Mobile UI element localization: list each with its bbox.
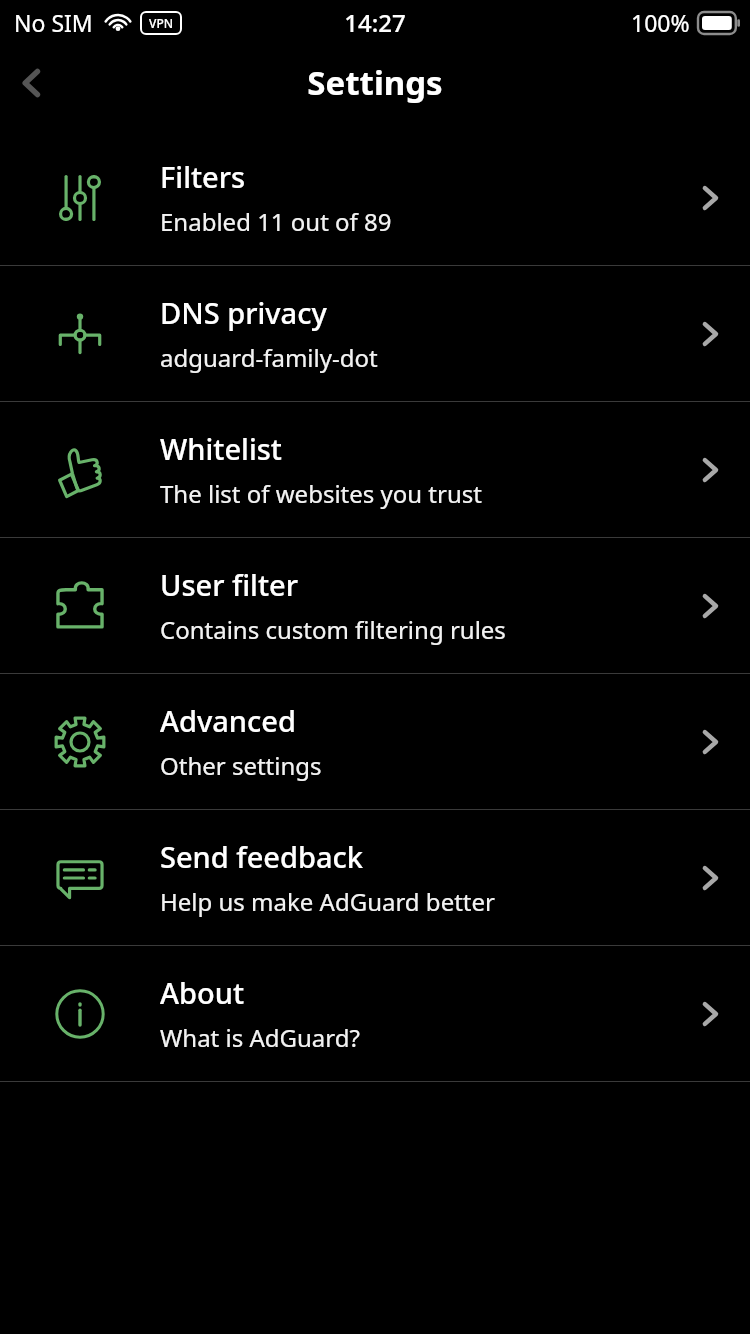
staticText: No SIM: [14, 7, 93, 38]
staticText: VPN: [149, 15, 174, 31]
staticText: Enabled 11 out of 89: [160, 205, 392, 238]
button[interactable]: Send feedback: [0, 810, 750, 945]
staticText: 100%: [631, 7, 690, 38]
staticText: 14:27: [344, 6, 406, 39]
staticText: The list of websites you trust: [160, 477, 482, 510]
staticText: What is AdGuard?: [160, 1021, 360, 1054]
staticText: User filter: [160, 565, 298, 604]
staticText: About: [160, 973, 244, 1012]
button[interactable]: DNS privacy: [0, 266, 750, 401]
button[interactable]: Whitelist: [0, 402, 750, 537]
staticText: Send feedback: [160, 837, 363, 876]
button[interactable]: Filters: [0, 130, 750, 265]
button[interactable]: User filter: [0, 538, 750, 673]
staticText: Advanced: [160, 701, 296, 740]
staticText: Settings: [307, 60, 443, 105]
staticText: Other settings: [160, 749, 322, 782]
staticText: Help us make AdGuard better: [160, 885, 495, 918]
button[interactable]: About: [0, 946, 750, 1081]
button[interactable]: Back: [0, 51, 64, 115]
staticText: adguard-family-dot: [160, 341, 378, 374]
staticText: Filters: [160, 157, 246, 196]
button[interactable]: Advanced: [0, 674, 750, 809]
staticText: DNS privacy: [160, 293, 327, 332]
staticText: Contains custom filtering rules: [160, 613, 506, 646]
staticText: Whitelist: [160, 429, 282, 468]
